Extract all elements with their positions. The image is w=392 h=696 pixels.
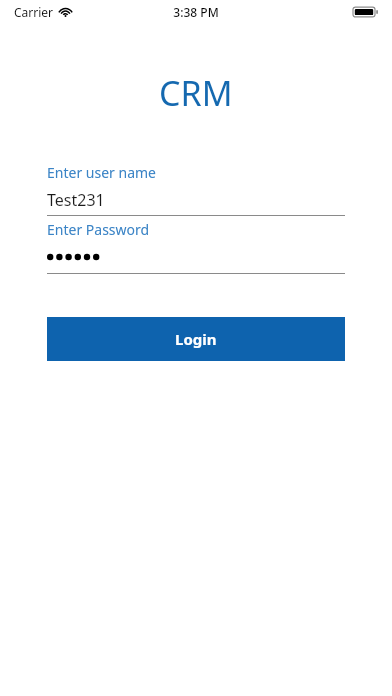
staticText: Test231 [47, 189, 105, 210]
staticText: Login [175, 329, 217, 349]
button[interactable]: Login [47, 317, 345, 361]
staticText: Enter Password [47, 220, 150, 239]
staticText: Carrier [14, 4, 54, 20]
button[interactable] [47, 248, 345, 266]
staticText: Enter user name [47, 163, 156, 182]
button[interactable]: Test231 [47, 189, 345, 210]
staticText: CRM [159, 70, 233, 116]
staticText: 3:38 PM [173, 4, 219, 20]
